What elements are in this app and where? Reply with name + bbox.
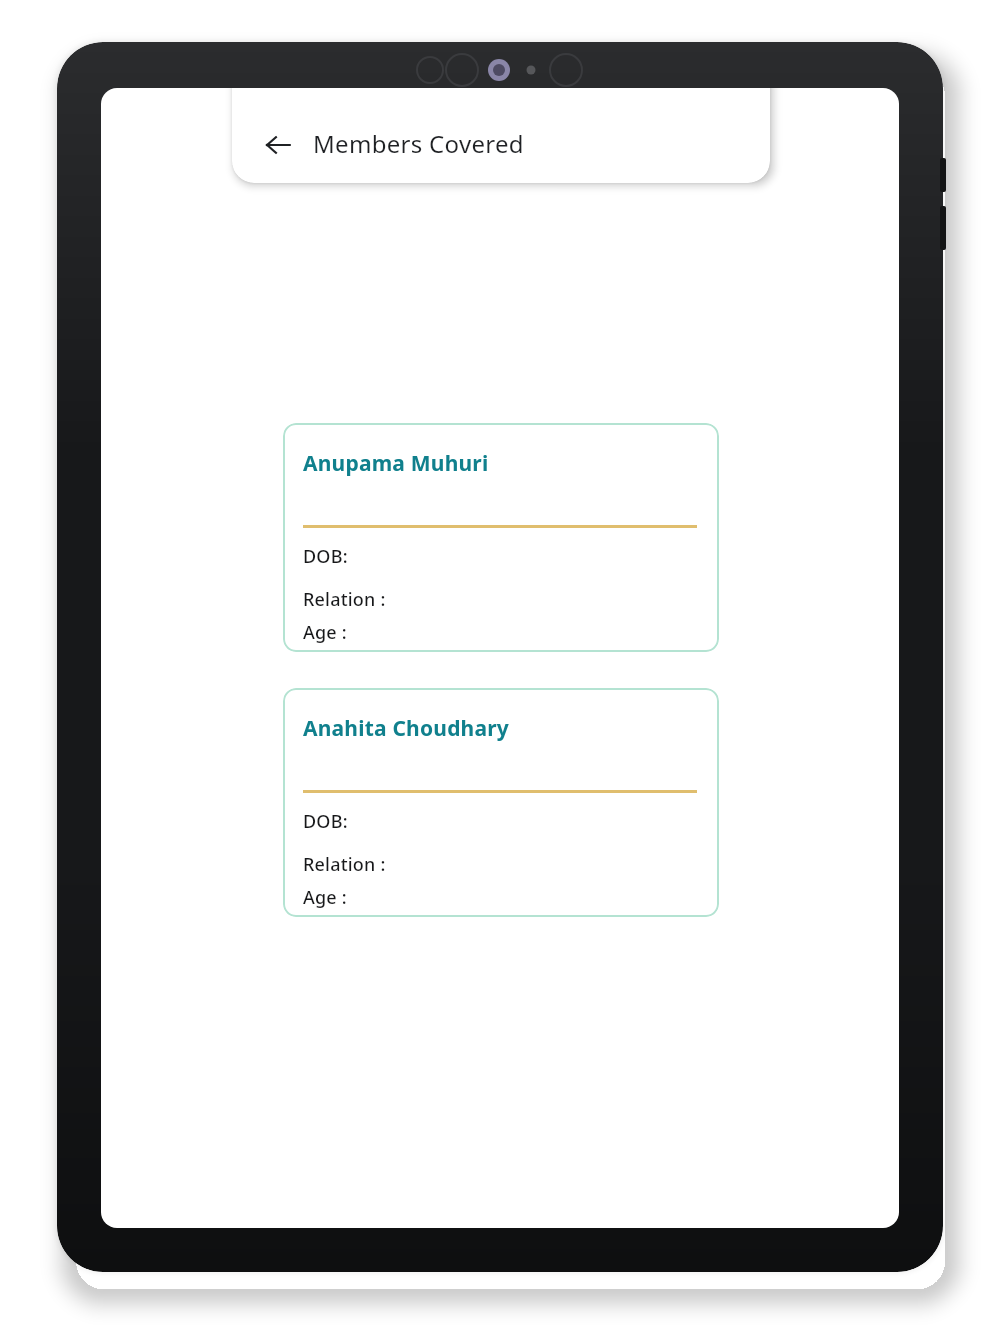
staticText: Anahita Choudhary bbox=[303, 714, 510, 743]
button[interactable]: Back bbox=[258, 125, 298, 165]
staticText: Age : bbox=[303, 885, 347, 910]
button[interactable]: Anupama Muhuri bbox=[283, 423, 719, 652]
staticText: Relation : bbox=[303, 852, 386, 877]
staticText: Relation : bbox=[303, 587, 386, 612]
staticText: Members Covered bbox=[313, 127, 524, 160]
staticText: Age : bbox=[303, 620, 347, 645]
staticText: DOB: bbox=[303, 544, 348, 569]
staticText: DOB: bbox=[303, 809, 348, 834]
staticText: Anupama Muhuri bbox=[303, 449, 489, 478]
button[interactable]: Anahita Choudhary bbox=[283, 688, 719, 917]
